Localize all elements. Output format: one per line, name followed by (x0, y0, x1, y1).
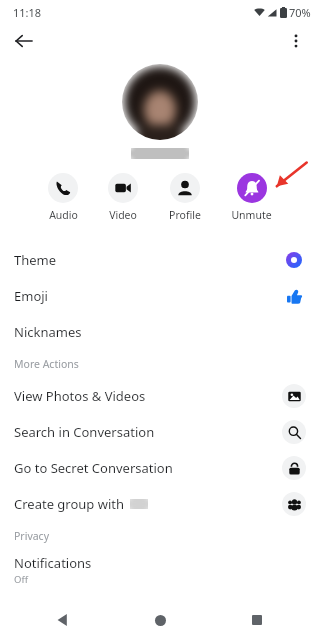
staticText: Nicknames (14, 323, 82, 341)
staticText: Profile (169, 208, 201, 222)
staticText: Video (109, 208, 137, 222)
staticText: 70% (289, 5, 311, 20)
staticText: View Photos & Videos (14, 387, 146, 405)
staticText: Search in Conversation (14, 423, 155, 441)
staticText: Theme (14, 251, 57, 269)
button[interactable]: Go to Secret Conversation (0, 450, 320, 486)
button[interactable]: Theme (0, 242, 320, 278)
button[interactable]: More options (280, 25, 312, 57)
staticText: Unmute (231, 208, 272, 222)
button[interactable]: Notifications (0, 550, 320, 590)
button[interactable]: Nicknames (0, 314, 320, 350)
staticText: Emoji (14, 287, 48, 305)
button[interactable]: Search in Conversation (0, 414, 320, 450)
staticText: More Actions (14, 357, 79, 371)
staticText: Audio (49, 208, 78, 222)
button[interactable]: Emoji (0, 278, 320, 314)
staticText: Notifications (14, 554, 92, 572)
button[interactable]: Profile (167, 173, 203, 222)
button[interactable]: Home (145, 605, 175, 635)
button[interactable]: Recent apps (242, 605, 272, 635)
staticText: Go to Secret Conversation (14, 459, 173, 477)
staticText: Off (14, 573, 28, 586)
button[interactable]: Unmute (229, 173, 274, 222)
staticText: Privacy (14, 529, 50, 543)
staticText: Create group with (14, 495, 125, 513)
button[interactable]: Back (8, 25, 40, 57)
button[interactable]: View Photos & Videos (0, 378, 320, 414)
button[interactable]: Video (106, 173, 140, 222)
button[interactable] (122, 64, 198, 140)
staticText: 11:18 (13, 5, 42, 20)
button[interactable]: Create group with (0, 486, 320, 522)
button[interactable]: Back (48, 605, 78, 635)
button[interactable]: Audio (46, 173, 80, 222)
